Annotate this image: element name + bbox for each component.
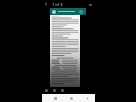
button[interactable]: Share — [51, 87, 58, 94]
button[interactable]: More options — [87, 1, 94, 8]
button[interactable]: Home — [68, 95, 75, 102]
button[interactable] — [50, 8, 86, 15]
button[interactable]: Download — [59, 87, 66, 94]
staticText: 1 of 3 — [52, 2, 63, 7]
button[interactable]: Recents — [52, 95, 59, 102]
button[interactable]: Back — [43, 1, 49, 7]
button[interactable]: Back — [84, 95, 91, 102]
button[interactable]: Print — [43, 87, 50, 94]
